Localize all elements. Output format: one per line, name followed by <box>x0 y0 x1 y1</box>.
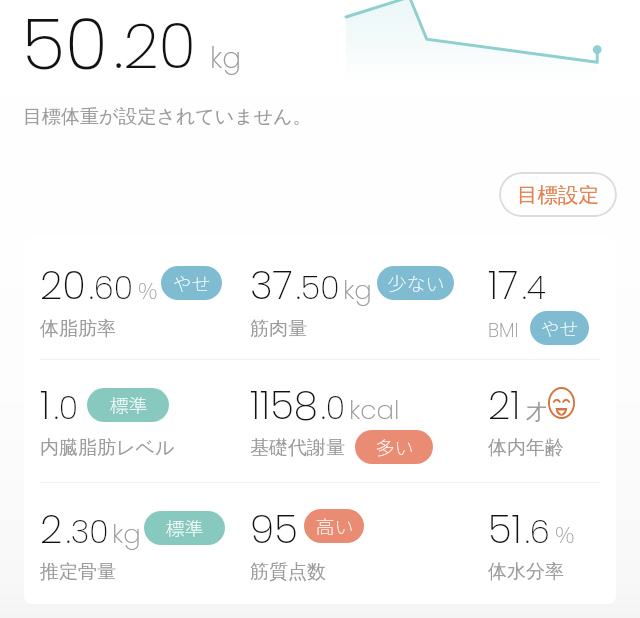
staticText: .20 <box>114 3 196 90</box>
button[interactable]: 少ない <box>377 266 454 300</box>
other: Weight trend chart <box>345 0 601 80</box>
staticText: 多い <box>375 433 414 461</box>
staticText: 筋質点数 <box>250 560 326 584</box>
staticText: やせ <box>540 314 579 342</box>
staticText: 50 <box>22 0 108 93</box>
staticText: 95 <box>250 502 298 557</box>
staticText: 2 <box>40 502 63 557</box>
button[interactable]: 標準 <box>144 511 225 545</box>
staticText: 推定骨量 <box>40 560 116 584</box>
staticText: 少ない <box>387 269 445 297</box>
staticText: .4 <box>522 265 546 310</box>
staticText: .0 <box>54 385 79 430</box>
staticText: 体水分率 <box>488 560 564 584</box>
staticText: 高い <box>315 512 354 540</box>
staticText: 21 <box>488 378 521 433</box>
staticText: .0 <box>321 385 346 430</box>
staticText: 17 <box>488 258 519 313</box>
button[interactable]: 高い <box>304 509 364 543</box>
staticText: 体脂肪率 <box>40 317 116 341</box>
button[interactable]: やせ <box>530 311 589 345</box>
staticText: 体内年齢 <box>488 436 564 460</box>
staticText: % <box>555 517 575 549</box>
staticText: .50 <box>296 265 340 310</box>
staticText: .6 <box>525 509 550 554</box>
staticText: 標準 <box>165 514 204 542</box>
button[interactable]: 目標設定 <box>499 172 617 217</box>
staticText: 37 <box>250 258 293 313</box>
staticText: % <box>138 273 158 305</box>
staticText: kg <box>112 516 141 552</box>
staticText: 標準 <box>109 391 148 419</box>
staticText: 目標体重が設定されていません。 <box>23 105 312 129</box>
staticText: 目標設定 <box>517 182 599 208</box>
staticText: 筋肉量 <box>250 317 307 341</box>
staticText: kg <box>210 39 242 78</box>
staticText: 1 <box>40 378 51 433</box>
staticText: kcal <box>349 392 400 428</box>
staticText: .30 <box>66 509 109 554</box>
staticText: 基礎代謝量 <box>250 436 345 460</box>
button[interactable]: 標準 <box>87 388 169 422</box>
staticText: 51 <box>488 502 522 557</box>
staticText: BMI <box>488 317 519 344</box>
staticText: やせ <box>172 269 211 297</box>
staticText: 1158 <box>250 378 318 433</box>
staticText: 才 <box>526 399 547 425</box>
button[interactable]: やせ <box>161 266 222 300</box>
staticText: kg <box>343 272 372 308</box>
other: Body age rating <box>548 387 575 419</box>
staticText: 20 <box>40 258 86 313</box>
button[interactable]: 多い <box>355 430 433 464</box>
staticText: .60 <box>89 265 133 310</box>
staticText: 内臓脂肪レベル <box>40 436 175 460</box>
